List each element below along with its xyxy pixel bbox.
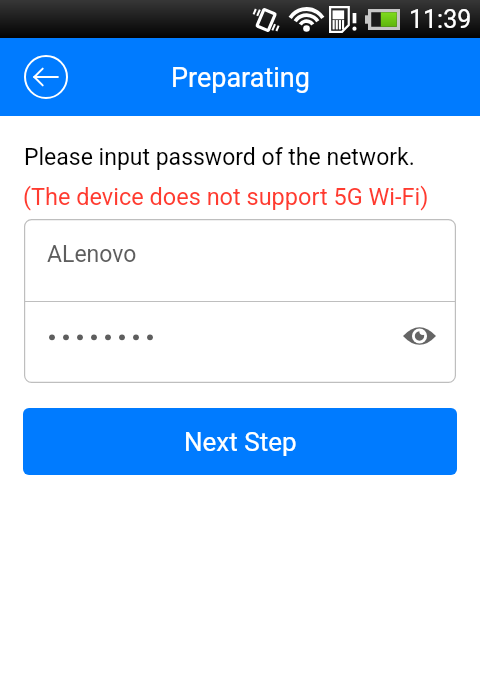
button[interactable]: Next Step (23, 408, 457, 475)
staticText: Preparating (171, 62, 310, 94)
button[interactable]: Back (14, 45, 78, 109)
staticText: Please input password of the network. (24, 144, 415, 171)
staticText: 11:39 (409, 5, 472, 34)
staticText: Next Step (184, 427, 297, 457)
staticText: (The device does not support 5G Wi-Fi) (23, 183, 429, 211)
staticText: ALenovo (47, 241, 137, 268)
button[interactable]: Show password (395, 312, 443, 360)
